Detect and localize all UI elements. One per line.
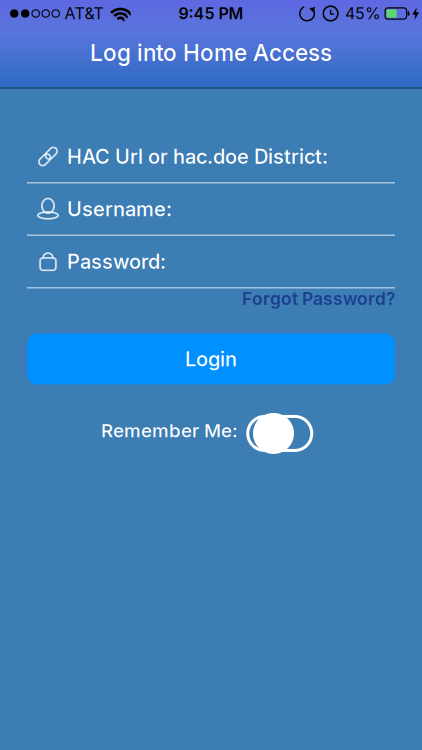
staticText: 45% <box>345 4 381 23</box>
button[interactable]: Password: <box>27 236 395 287</box>
staticText: Forgot Password? <box>242 288 395 309</box>
button[interactable]: Login <box>27 333 395 384</box>
button[interactable]: HAC Url or hac.doe District: <box>27 131 395 182</box>
staticText: Log into Home Access <box>90 39 332 66</box>
button[interactable]: Remember Me <box>253 412 321 454</box>
button[interactable]: Username: <box>27 183 395 234</box>
staticText: Login <box>185 347 237 371</box>
staticText: Password: <box>67 250 166 273</box>
staticText: Remember Me: <box>101 419 238 441</box>
button[interactable]: Forgot Password? <box>242 288 395 309</box>
staticText: AT&T <box>64 4 103 23</box>
staticText: 9:45 PM <box>178 4 243 23</box>
staticText: HAC Url or hac.doe District: <box>67 145 328 168</box>
staticText: Username: <box>67 197 172 221</box>
